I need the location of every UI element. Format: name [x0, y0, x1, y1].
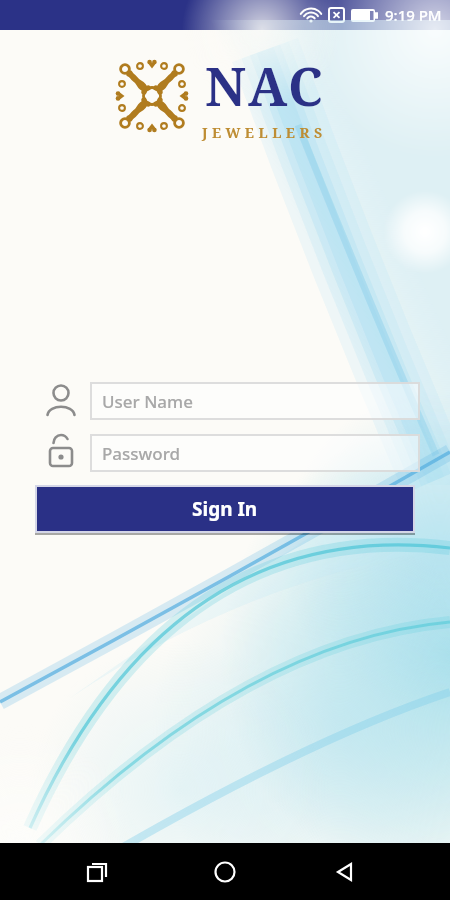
button[interactable]: Sign In — [35, 485, 415, 533]
button[interactable] — [305, 843, 385, 900]
staticText: Sign In — [192, 496, 258, 522]
button[interactable] — [57, 843, 137, 900]
button[interactable]: Password — [90, 434, 420, 472]
staticText: JEWELLERS — [202, 123, 327, 142]
staticText: Password — [102, 442, 181, 465]
staticText: User Name — [102, 390, 193, 413]
staticText: NAC — [205, 50, 325, 121]
button[interactable]: User Name — [90, 382, 420, 420]
staticText: 9:19 PM — [385, 5, 442, 25]
button[interactable] — [185, 843, 265, 900]
